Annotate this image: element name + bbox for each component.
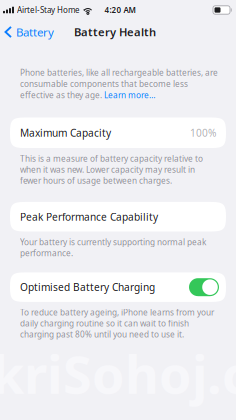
button[interactable]: Learn more… — [104, 90, 156, 101]
button[interactable]: Maximum Capacity — [0, 117, 236, 148]
button[interactable]: Peak Performance Capability — [0, 202, 236, 231]
staticText: Peak Performance Capability — [20, 210, 158, 223]
staticText: Phone batteries, like all rechargeable b… — [20, 67, 218, 78]
button[interactable]: Battery — [0, 21, 60, 43]
staticText: Maximum Capacity — [20, 126, 111, 140]
button[interactable]: Optimised Battery Charging — [0, 272, 236, 302]
staticText: Optimised Battery Charging — [20, 280, 155, 294]
staticText: This is a measure of battery capacity re… — [20, 153, 203, 186]
staticText: Battery Health — [74, 25, 156, 39]
staticText: Battery — [16, 24, 54, 40]
staticText: 4:20 AM — [104, 5, 135, 15]
staticText: Airtel-Stay Home — [17, 5, 80, 15]
staticText: Learn more… — [104, 90, 156, 101]
staticText: consumable components that become less — [20, 78, 188, 89]
staticText: effective as they age. — [20, 90, 104, 101]
staticText: 100% — [190, 126, 216, 140]
staticText: To reduce battery ageing, iPhone learns … — [20, 307, 214, 340]
staticText: Your battery is currently supporting nor… — [20, 236, 206, 258]
